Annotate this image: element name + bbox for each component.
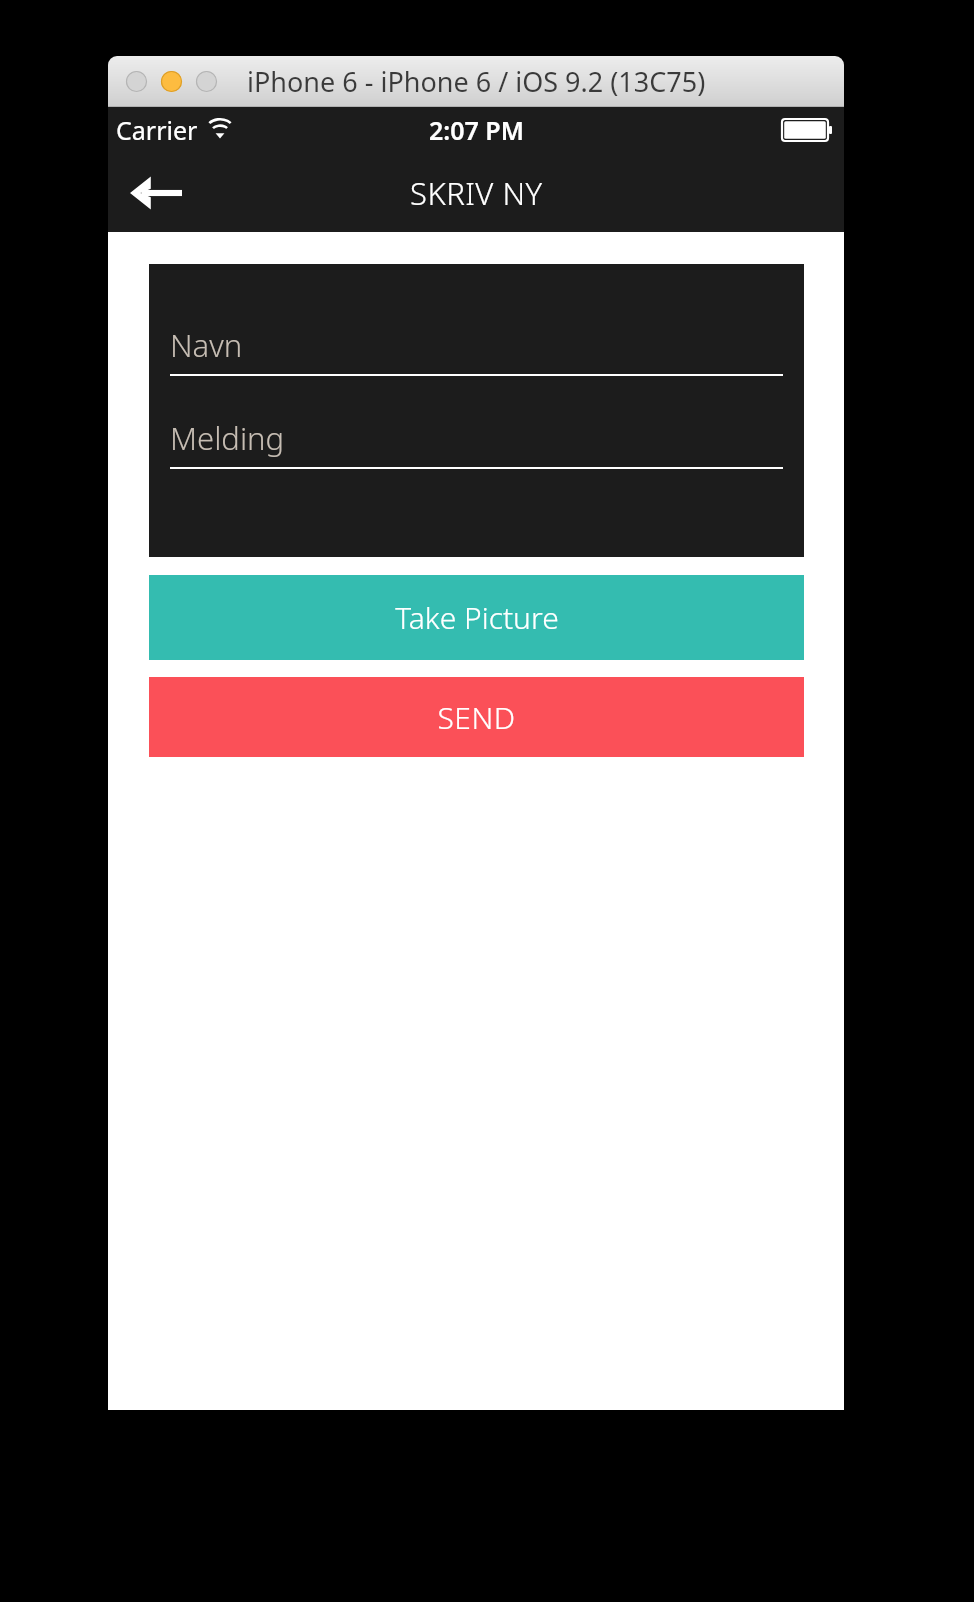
staticText: iPhone 6 - iPhone 6 / iOS 9.2 (13C75) bbox=[247, 63, 706, 100]
button[interactable]: SEND bbox=[149, 677, 804, 757]
button[interactable]: Minimize bbox=[161, 71, 182, 92]
staticText: Navn bbox=[170, 324, 243, 366]
staticText: Melding bbox=[170, 417, 285, 459]
staticText: SEND bbox=[437, 697, 516, 738]
staticText: Carrier bbox=[116, 113, 198, 147]
staticText: SKRIV NY bbox=[410, 172, 543, 214]
staticText: 2:07 PM bbox=[429, 113, 524, 147]
button[interactable]: Melding bbox=[170, 409, 783, 469]
button[interactable]: Navn bbox=[170, 316, 783, 376]
button[interactable]: Close bbox=[126, 71, 147, 92]
button[interactable]: Zoom bbox=[196, 71, 217, 92]
staticText: Take Picture bbox=[395, 597, 559, 638]
button[interactable]: Take Picture bbox=[149, 575, 804, 660]
button[interactable]: Back bbox=[122, 165, 190, 221]
